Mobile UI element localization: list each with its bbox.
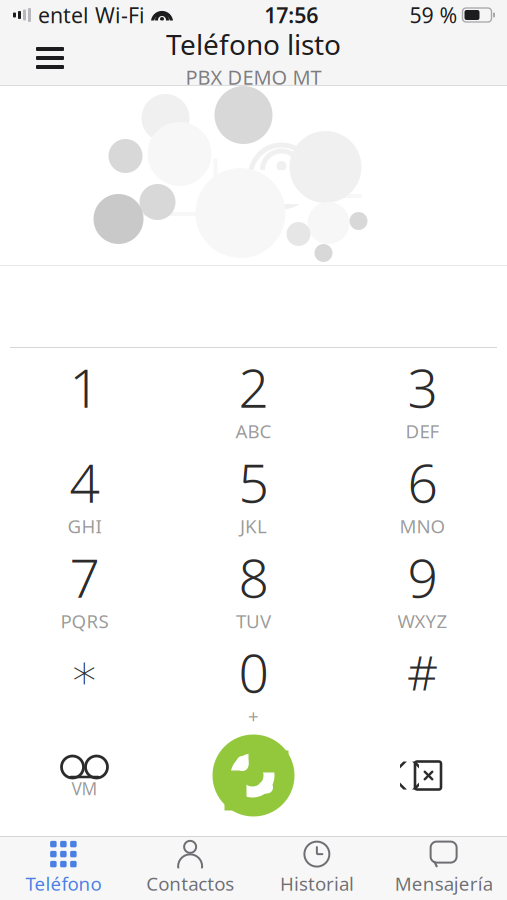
button[interactable]: Teléfono: [0, 836, 127, 900]
button[interactable]: Menu: [22, 32, 78, 84]
button[interactable]: ∗: [0, 633, 169, 728]
staticText: 0: [238, 637, 268, 707]
staticText: MNO: [399, 513, 445, 538]
staticText: Teléfono listo: [166, 26, 341, 63]
button[interactable]: Voicemail: [0, 728, 169, 823]
staticText: 1: [69, 352, 99, 422]
button[interactable]: Delete: [338, 728, 507, 823]
staticText: 4: [69, 447, 99, 517]
button[interactable]: #: [338, 633, 507, 728]
staticText: 5: [238, 447, 268, 517]
button[interactable]: 7: [0, 538, 169, 633]
button[interactable]: 3: [338, 348, 507, 443]
staticText: 8: [238, 542, 268, 612]
staticText: VM: [71, 777, 97, 800]
button[interactable]: Contactos: [127, 836, 254, 900]
button[interactable]: 2: [169, 348, 338, 443]
staticText: PBX DEMO MT: [185, 64, 321, 90]
button[interactable]: 4: [0, 443, 169, 538]
button[interactable]: Call: [169, 728, 338, 823]
staticText: 3: [407, 352, 437, 422]
staticText: 9: [407, 542, 437, 612]
staticText: WXYZ: [397, 608, 447, 633]
staticText: ABC: [235, 418, 271, 443]
staticText: JKL: [240, 513, 267, 538]
staticText: DEF: [405, 418, 439, 443]
staticText: Teléfono: [25, 871, 101, 896]
button[interactable]: Historial: [253, 836, 380, 900]
staticText: Historial: [280, 871, 354, 896]
button[interactable]: 1: [0, 348, 169, 443]
staticText: PQRS: [60, 608, 108, 633]
staticText: #: [407, 640, 438, 704]
staticText: 2: [238, 352, 268, 422]
staticText: 7: [69, 542, 99, 612]
button[interactable]: 0: [169, 633, 338, 728]
button[interactable]: 5: [169, 443, 338, 538]
staticText: +: [248, 703, 259, 728]
staticText: ∗: [69, 645, 99, 699]
button[interactable]: 9: [338, 538, 507, 633]
staticText: 6: [407, 447, 437, 517]
button[interactable]: 8: [169, 538, 338, 633]
staticText: 17:56: [264, 1, 318, 29]
staticText: Contactos: [146, 871, 234, 896]
button[interactable]: 6: [338, 443, 507, 538]
staticText: GHI: [67, 513, 101, 538]
staticText: Mensajería: [395, 871, 493, 896]
staticText: entel Wi-Fi: [38, 1, 145, 29]
button[interactable]: Mensajería: [380, 836, 507, 900]
staticText: TUV: [236, 608, 271, 633]
staticText: 59 %: [409, 1, 457, 29]
